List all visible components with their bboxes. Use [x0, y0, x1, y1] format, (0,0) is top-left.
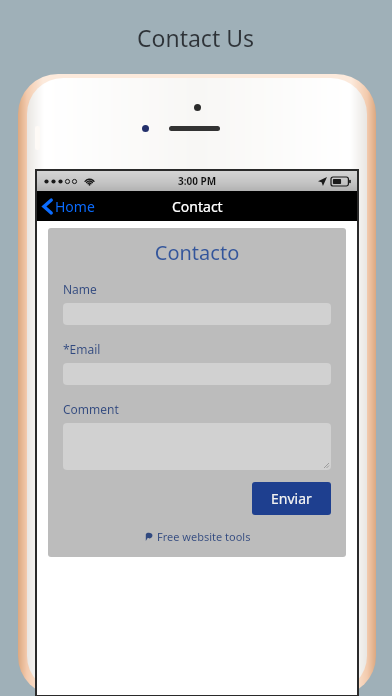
staticText: Contact Us: [137, 22, 255, 53]
staticText: Name: [63, 281, 97, 297]
staticText: Contact: [172, 197, 223, 216]
staticText: Enviar: [271, 489, 312, 508]
staticText: Home: [55, 197, 95, 216]
staticText: 3:00 PM: [178, 174, 217, 188]
button[interactable]: Home: [37, 191, 105, 221]
staticText: Comment: [63, 401, 119, 417]
staticText: Contacto: [63, 239, 331, 266]
button[interactable]: Free website tools logo: [63, 529, 331, 544]
staticText: Free website tools: [157, 529, 251, 544]
other: Free website tools logo: [144, 532, 153, 541]
button[interactable]: Enviar: [252, 482, 331, 515]
staticText: *Email: [63, 341, 101, 357]
